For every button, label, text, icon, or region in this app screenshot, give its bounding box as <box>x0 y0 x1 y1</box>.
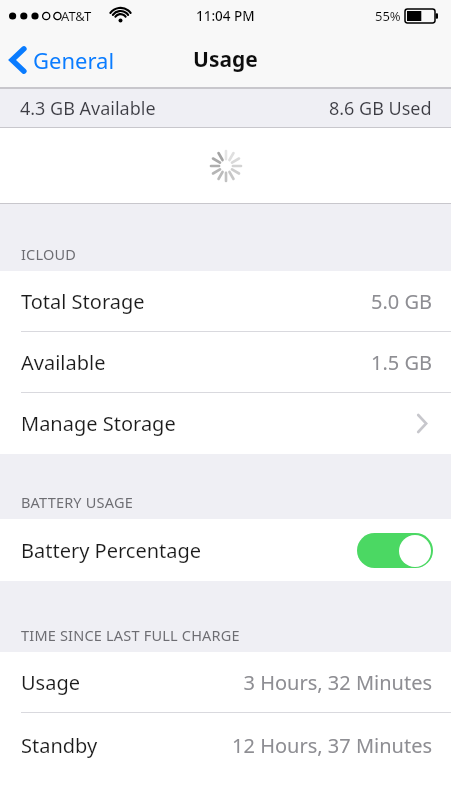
staticText: AT&T <box>61 7 92 25</box>
staticText: General <box>33 45 115 75</box>
staticText: 11:04 PM <box>196 7 255 25</box>
staticText: BATTERY USAGE <box>21 492 133 512</box>
staticText: ICLOUD <box>21 244 77 264</box>
button[interactable]: Battery Percentage <box>0 519 451 581</box>
button[interactable]: General <box>0 39 125 81</box>
staticText: 8.6 GB Used <box>329 96 432 121</box>
staticText: 5.0 GB <box>371 288 432 315</box>
staticText: Usage <box>193 45 258 74</box>
staticText: 3 Hours, 32 Minutes <box>243 669 432 696</box>
button[interactable]: Battery Percentage toggle, on <box>357 533 433 568</box>
button[interactable]: Standby <box>0 713 451 777</box>
button[interactable]: Available <box>0 332 451 393</box>
staticText: 1.5 GB <box>371 349 432 376</box>
staticText: 55% <box>375 7 401 25</box>
staticText: Manage Storage <box>21 410 176 437</box>
button[interactable]: Total Storage <box>0 271 451 332</box>
staticText: 4.3 GB Available <box>20 96 156 121</box>
staticText: Battery Percentage <box>21 537 202 564</box>
staticText: 12 Hours, 37 Minutes <box>232 732 432 759</box>
staticText: TIME SINCE LAST FULL CHARGE <box>21 625 240 645</box>
button[interactable]: Usage <box>0 652 451 713</box>
button[interactable]: Manage Storage <box>0 393 451 454</box>
staticText: Available <box>21 349 106 376</box>
staticText: Total Storage <box>21 288 145 315</box>
staticText: Standby <box>21 732 98 759</box>
staticText: Usage <box>21 669 80 696</box>
